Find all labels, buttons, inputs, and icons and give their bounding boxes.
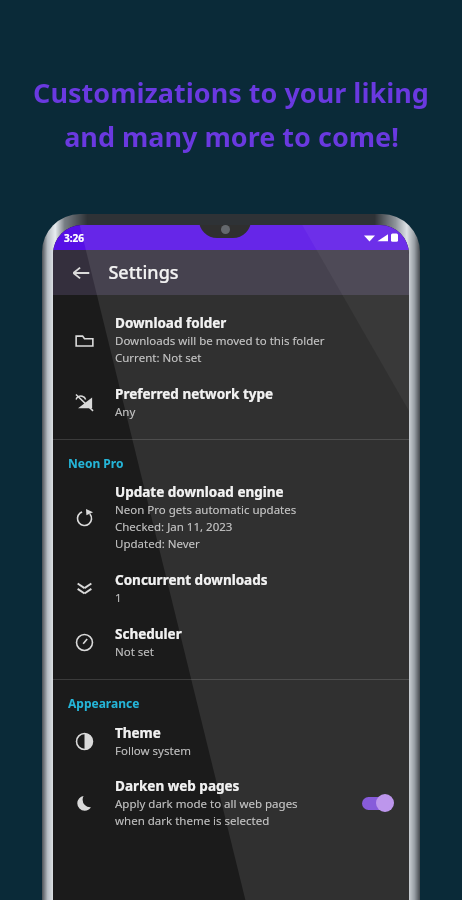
staticText: Updated: Never [115,536,200,552]
staticText: Download folder [115,314,227,332]
button[interactable]: Update download engine [53,474,409,561]
staticText: Follow system [115,743,191,759]
staticText: Any [115,404,136,420]
button[interactable]: Concurrent downloads [53,561,409,615]
staticText: Downloads will be moved to this folder [115,333,325,349]
staticText: and many more to come! [64,118,399,155]
button[interactable]: Theme [53,714,409,768]
button[interactable]: Preferred network type [53,375,409,429]
staticText: Neon Pro gets automatic updates [115,502,297,518]
staticText: Scheduler [115,625,182,643]
staticText: Current: Not set [115,350,202,366]
staticText: when dark theme is selected [115,813,270,829]
staticText: Darken web pages [115,777,240,795]
staticText: Settings [108,260,179,285]
staticText: 3:26 [64,231,84,245]
button[interactable]: Darken web pages [360,792,396,814]
button[interactable]: Download folder [53,305,409,375]
staticText: Update download engine [115,483,284,501]
button[interactable]: Darken web pages [53,768,409,838]
staticText: Not set [115,644,154,660]
staticText: 1 [115,590,122,606]
staticText: Preferred network type [115,385,274,403]
staticText: Customizations to your liking [33,74,429,111]
staticText: Appearance [68,695,140,711]
staticText: Concurrent downloads [115,571,268,589]
staticText: Theme [115,724,161,742]
button[interactable]: Scheduler [53,615,409,669]
staticText: Apply dark mode to all web pages [115,796,298,812]
button[interactable]: Back [65,257,97,289]
staticText: Neon Pro [68,455,124,471]
staticText: Checked: Jan 11, 2023 [115,519,233,535]
